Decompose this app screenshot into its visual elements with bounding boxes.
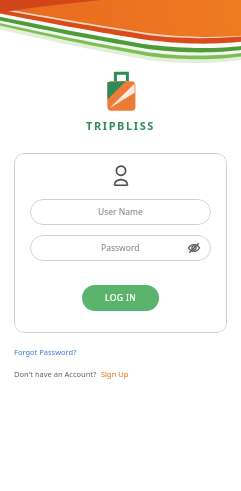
button[interactable]: User Name	[30, 199, 211, 225]
button[interactable]: Show password	[187, 241, 201, 255]
button[interactable]: Password	[30, 235, 211, 261]
staticText: User Name	[98, 206, 143, 218]
staticText: Password	[101, 242, 140, 254]
button[interactable]: Sign Up	[101, 369, 129, 379]
staticText: LOG IN	[105, 292, 137, 304]
staticText: Don't have an Account?	[14, 369, 97, 379]
button[interactable]: LOG IN	[82, 285, 159, 311]
staticText: TRIPBLISS	[86, 118, 155, 133]
staticText: Forgot Password?	[14, 347, 77, 357]
staticText: Sign Up	[101, 369, 129, 379]
button[interactable]: Forgot Password?	[14, 347, 77, 357]
